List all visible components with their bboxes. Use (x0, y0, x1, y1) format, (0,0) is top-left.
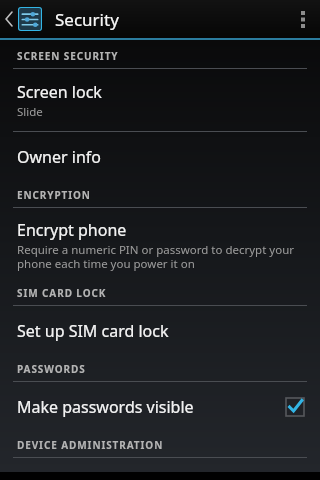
button[interactable]: Set up SIM card lock (0, 306, 320, 355)
staticText: Encrypt phone (17, 219, 127, 241)
staticText: Slide (17, 104, 43, 120)
button[interactable]: Owner info (0, 132, 320, 181)
staticText: SIM CARD LOCK (17, 286, 107, 300)
staticText: Require a numeric PIN or password to dec… (17, 242, 306, 271)
button[interactable]: Navigate up (0, 0, 46, 38)
staticText: Screen lock (17, 81, 102, 103)
staticText: DEVICE ADMINISTRATION (17, 438, 164, 452)
button[interactable]: More options (286, 0, 320, 38)
staticText: ENCRYPTION (17, 188, 91, 202)
button[interactable]: Make passwords visible (284, 396, 306, 418)
button[interactable]: Make passwords visible (0, 382, 320, 431)
button[interactable]: Screen lock (0, 69, 320, 131)
staticText: Security (55, 8, 119, 31)
staticText: Set up SIM card lock (17, 320, 169, 342)
staticText: SCREEN SECURITY (17, 49, 119, 63)
staticText: Make passwords visible (17, 396, 194, 418)
staticText: PASSWORDS (17, 362, 86, 376)
button[interactable]: Encrypt phone (0, 208, 320, 280)
staticText: Owner info (17, 146, 101, 168)
